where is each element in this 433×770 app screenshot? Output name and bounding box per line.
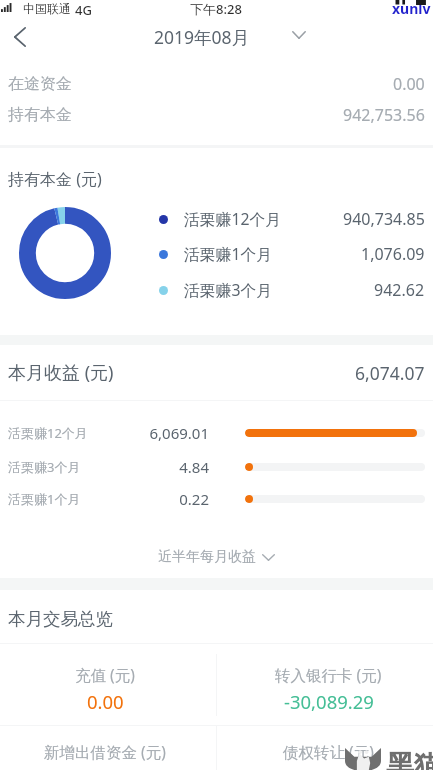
staticText: 活栗赚1个月 xyxy=(184,243,273,265)
staticText: 活栗赚12个月 xyxy=(184,208,282,230)
staticText: 黑猫 xyxy=(386,748,433,770)
staticText: 6,074.07 xyxy=(355,361,425,385)
staticText: 近半年每月收益 xyxy=(158,548,256,566)
staticText: 本月收益 (元) xyxy=(8,360,114,385)
staticText: 活栗赚3个月 xyxy=(184,279,273,301)
staticText: 2019年08月 xyxy=(154,25,250,49)
button[interactable]: 活栗赚1个月 xyxy=(0,487,433,511)
staticText: 转入银行卡 (元) xyxy=(275,664,382,685)
staticText: 1,076.09 xyxy=(361,243,425,265)
button[interactable]: 返回 xyxy=(0,17,40,57)
staticText: 持有本金 (元) xyxy=(8,168,102,190)
staticText: 942,753.56 xyxy=(343,104,425,126)
staticText: 中国联通 xyxy=(23,1,71,16)
staticText: 4G xyxy=(75,1,92,17)
staticText: 0.22 xyxy=(108,489,209,509)
button[interactable]: 活栗赚3个月 xyxy=(159,278,425,302)
button[interactable]: 近半年每月收益 xyxy=(158,548,275,566)
staticText: 持有本金 xyxy=(8,105,72,125)
staticText: 债权转让 (元) xyxy=(283,741,374,762)
staticText: 0.00 xyxy=(87,689,124,714)
staticText: 本月交易总览 xyxy=(8,608,113,630)
staticText: 新增出借资金 (元) xyxy=(44,741,166,762)
staticText: 942.62 xyxy=(374,279,425,301)
button[interactable]: 新增出借资金 (元) xyxy=(0,726,210,770)
button[interactable]: 债权转让 (元) xyxy=(217,726,433,770)
staticText: 活栗赚3个月 xyxy=(8,458,108,476)
staticText: 6,069.01 xyxy=(108,423,209,443)
staticText: 940,734.85 xyxy=(343,208,425,230)
staticText: -30,089.29 xyxy=(284,689,374,714)
staticText: 0.00 xyxy=(393,73,425,95)
staticText: 活栗赚1个月 xyxy=(8,490,108,508)
staticText: 在途资金 xyxy=(8,74,72,94)
staticText: 4.84 xyxy=(108,457,209,477)
button[interactable]: 持有本金 xyxy=(0,99,433,130)
button[interactable]: 活栗赚3个月 xyxy=(0,455,433,479)
staticText: xunlv xyxy=(392,0,431,15)
button[interactable]: 转入银行卡 (元) xyxy=(217,644,433,725)
button[interactable]: 本月收益 (元) xyxy=(0,345,433,400)
button[interactable]: 在途资金 xyxy=(0,68,433,99)
button[interactable]: 活栗赚12个月 xyxy=(159,207,425,231)
staticText: 活栗赚12个月 xyxy=(8,424,108,442)
staticText: 下午8:28 xyxy=(190,0,242,16)
button[interactable]: 充值 (元) xyxy=(0,644,210,725)
button[interactable]: 2019年08月 xyxy=(154,25,306,49)
button[interactable]: 活栗赚1个月 xyxy=(159,242,425,266)
staticText: 充值 (元) xyxy=(75,664,135,685)
button[interactable]: 活栗赚12个月 xyxy=(0,421,433,445)
